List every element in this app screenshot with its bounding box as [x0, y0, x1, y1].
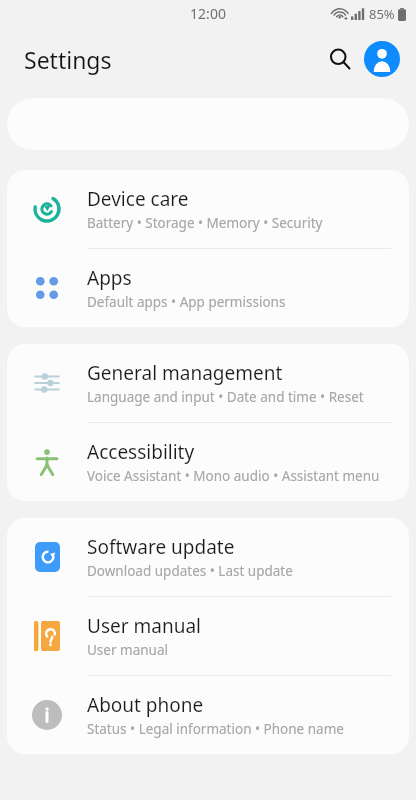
staticText: 12:00	[190, 4, 226, 23]
staticText: Status • Legal information • Phone name	[87, 720, 344, 738]
staticText: Accessibility	[87, 439, 195, 465]
staticText: User manual	[87, 641, 168, 659]
staticText: User manual	[87, 613, 201, 639]
button[interactable]: Software update	[7, 518, 409, 596]
staticText: Language and input • Date and time • Res…	[87, 388, 364, 406]
button[interactable]: General management	[7, 344, 409, 422]
staticText: Software update	[87, 534, 235, 560]
staticText: 85%	[369, 5, 395, 23]
button[interactable]: User manual	[7, 597, 409, 675]
staticText: Download updates • Last update	[87, 562, 293, 580]
staticText: About phone	[87, 692, 204, 718]
staticText: General management	[87, 360, 283, 386]
staticText: Default apps • App permissions	[87, 293, 286, 311]
button[interactable]: About phone	[7, 676, 409, 754]
button[interactable]: Device care	[7, 170, 409, 248]
button[interactable]: Search	[318, 37, 362, 81]
staticText: Apps	[87, 265, 132, 291]
staticText: Device care	[87, 186, 189, 212]
staticText: Settings	[24, 44, 112, 75]
button[interactable]: Apps	[7, 249, 409, 327]
button[interactable]: Accessibility	[7, 423, 409, 501]
staticText: Battery • Storage • Memory • Security	[87, 214, 323, 232]
staticText: Voice Assistant • Mono audio • Assistant…	[87, 467, 380, 485]
button[interactable]: Account	[364, 41, 400, 77]
